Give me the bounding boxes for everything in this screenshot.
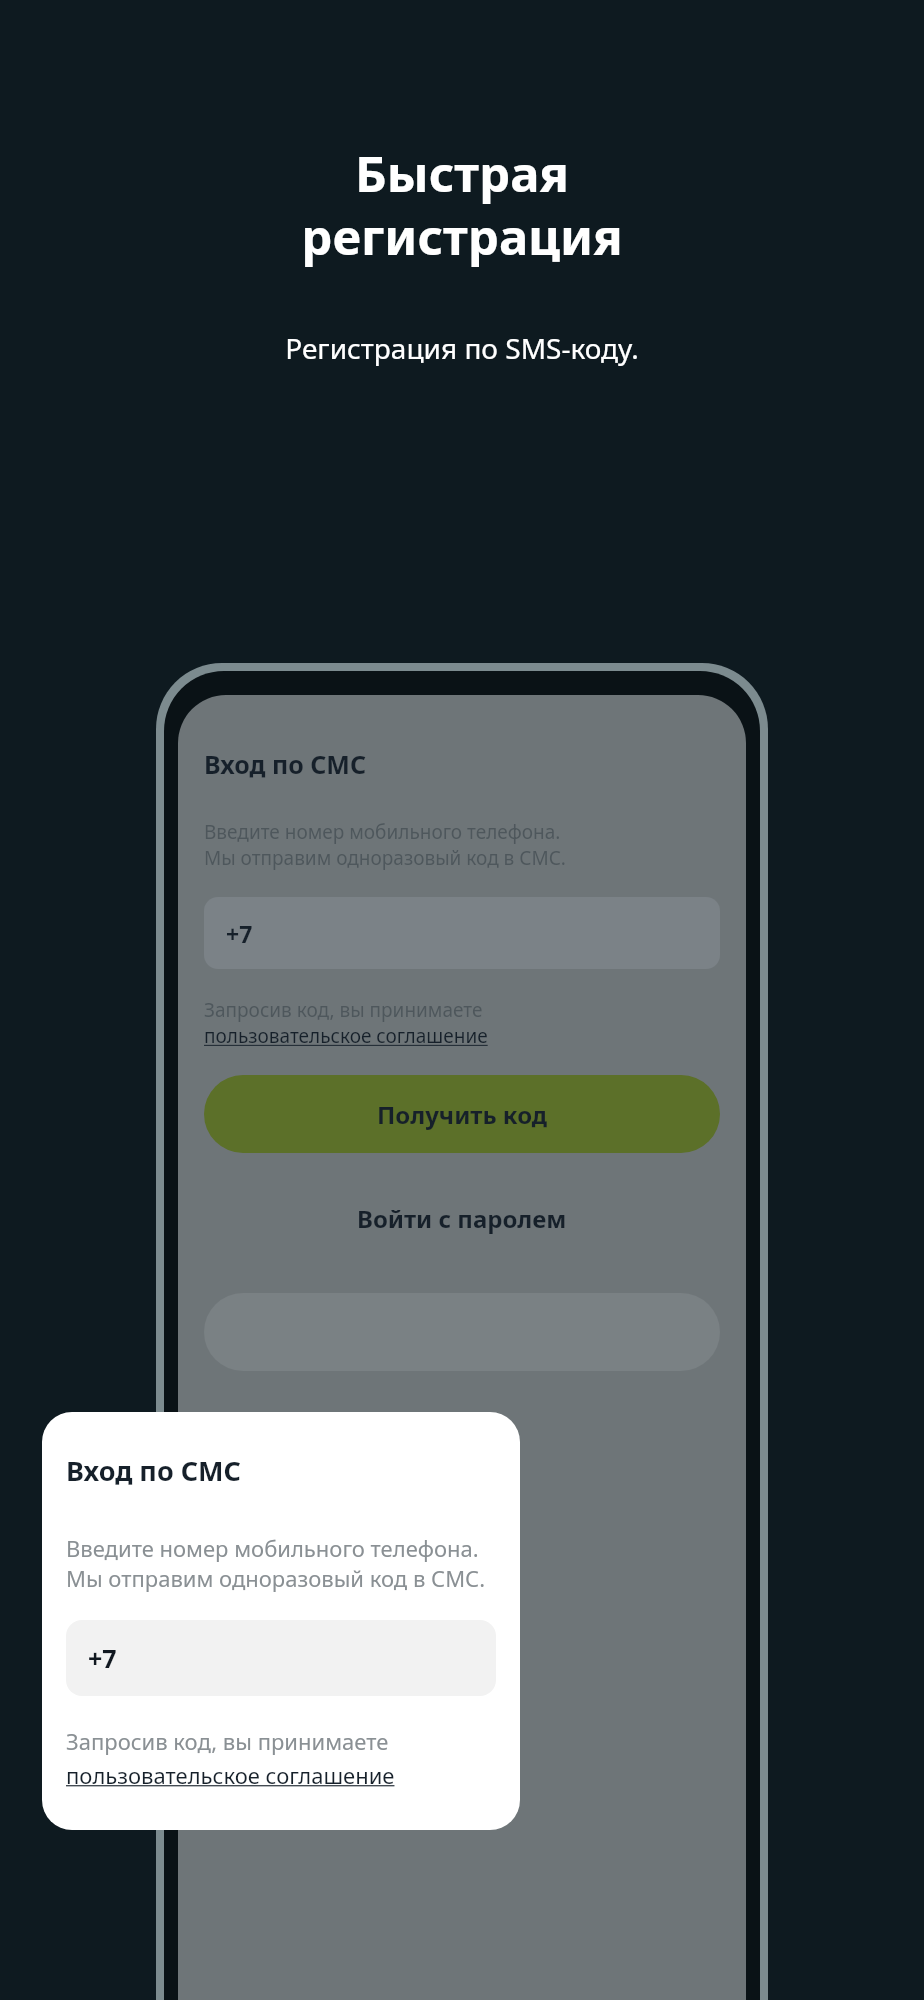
staticText: Введите номер мобильного телефона. Мы от… [204,819,566,871]
staticText: +7 [226,918,253,949]
staticText: Регистрация по SMS-коду. [285,329,639,367]
staticText: Введите номер мобильного телефона. Мы от… [66,1533,486,1594]
button[interactable]: пользовательское соглашение [66,1760,395,1790]
staticText: пользовательское соглашение [66,1760,395,1790]
staticText: Вход по СМС [204,747,367,781]
staticText: +7 [88,1641,117,1675]
staticText: пользовательское соглашение [204,1023,488,1049]
staticText: Войти с паролем [357,1202,567,1235]
button[interactable]: Войти с паролем [204,1183,720,1253]
staticText: Запросив код, вы принимаете [66,1726,389,1756]
staticText: Быстрая регистрация [301,140,623,269]
button[interactable]: +7 [204,897,720,969]
staticText: Вход по СМС [66,1452,241,1489]
button[interactable]: +7 [66,1620,496,1696]
button[interactable]: пользовательское соглашение [204,1023,488,1049]
button[interactable]: Получить код [204,1075,720,1153]
staticText: Получить код [377,1098,548,1131]
staticText: Запросив код, вы принимаете [204,997,483,1023]
